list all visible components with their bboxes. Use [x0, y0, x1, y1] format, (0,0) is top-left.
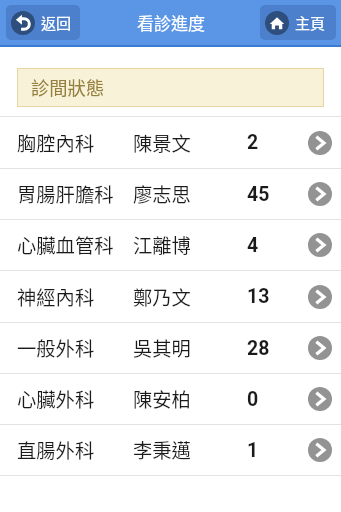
- staticText: 吳其明: [133, 334, 247, 362]
- staticText: 0: [247, 388, 307, 411]
- staticText: 4: [247, 234, 307, 257]
- button[interactable]: 主頁: [260, 5, 336, 40]
- button[interactable]: 心臟血管科: [0, 220, 341, 270]
- staticText: 廖志思: [133, 180, 247, 208]
- staticText: 1: [247, 439, 307, 462]
- button[interactable]: 胃腸肝膽科: [0, 169, 341, 219]
- staticText: 陳安柏: [133, 385, 247, 413]
- button[interactable]: 一般外科: [0, 323, 341, 373]
- staticText: 28: [247, 337, 307, 360]
- staticText: 心臟外科: [17, 385, 133, 413]
- staticText: 陳景文: [133, 129, 247, 157]
- staticText: 一般外科: [17, 334, 133, 362]
- button[interactable]: 查看詳情: [308, 131, 332, 155]
- staticText: 看診進度: [137, 10, 205, 35]
- staticText: 返回: [41, 12, 72, 34]
- button[interactable]: 查看詳情: [308, 387, 332, 411]
- button[interactable]: 查看詳情: [308, 233, 332, 257]
- button[interactable]: 查看詳情: [308, 438, 332, 462]
- staticText: 主頁: [295, 12, 326, 34]
- button[interactable]: 查看詳情: [308, 336, 332, 360]
- staticText: 2: [247, 131, 307, 154]
- staticText: 鄭乃文: [133, 283, 247, 311]
- staticText: 診間狀態: [31, 74, 105, 100]
- staticText: 胃腸肝膽科: [17, 180, 133, 208]
- staticText: 李秉邁: [133, 436, 247, 464]
- staticText: 江離博: [133, 231, 247, 259]
- button[interactable]: 直腸外科: [0, 425, 341, 475]
- button[interactable]: 胸腔內科: [0, 117, 341, 168]
- button[interactable]: 查看詳情: [308, 182, 332, 206]
- staticText: 13: [247, 285, 307, 308]
- button[interactable]: 返回: [6, 5, 80, 40]
- staticText: 神經內科: [17, 283, 133, 311]
- staticText: 45: [247, 183, 307, 206]
- staticText: 直腸外科: [17, 436, 133, 464]
- button[interactable]: 查看詳情: [308, 285, 332, 309]
- staticText: 胸腔內科: [17, 129, 133, 157]
- staticText: 心臟血管科: [17, 231, 133, 259]
- button[interactable]: 心臟外科: [0, 374, 341, 424]
- button[interactable]: 神經內科: [0, 271, 341, 322]
